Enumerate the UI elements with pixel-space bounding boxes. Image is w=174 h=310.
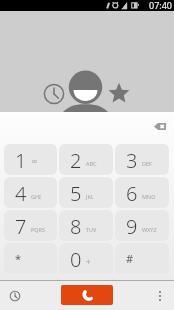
staticText: 9 [126, 213, 138, 240]
staticText: PQRS [31, 226, 46, 233]
staticText: 7 [15, 213, 27, 240]
staticText: 1 [15, 147, 27, 174]
staticText: TUV [86, 226, 97, 233]
staticText: ABC [86, 160, 97, 167]
staticText: WXYZ [142, 226, 157, 233]
button[interactable]: Backspace [147, 115, 173, 138]
button[interactable]: * [4, 243, 57, 274]
staticText: GHI [31, 193, 41, 200]
staticText: # [126, 251, 134, 266]
button[interactable]: 6 [115, 177, 169, 208]
staticText: 07:40 [149, 0, 173, 10]
button[interactable]: 8 [59, 210, 113, 241]
staticText: * [15, 251, 22, 266]
button[interactable]: 7 [4, 210, 57, 241]
button[interactable]: 9 [115, 210, 169, 241]
staticText: DEF [142, 160, 152, 167]
staticText: 8 [70, 213, 82, 240]
button[interactable]: 4 [4, 177, 57, 208]
staticText: ∞ [31, 157, 38, 166]
button[interactable]: 3 [115, 144, 169, 175]
button[interactable]: 5 [59, 177, 113, 208]
staticText: + [86, 256, 91, 267]
staticText: 4 [15, 180, 27, 207]
staticText: MNO [142, 193, 156, 200]
button[interactable]: # [115, 243, 169, 274]
button[interactable]: Recents [38, 78, 70, 110]
staticText: 6 [126, 180, 138, 207]
button[interactable]: 2 [59, 144, 113, 175]
staticText: 3 [126, 147, 138, 174]
button[interactable]: 0 [59, 243, 113, 274]
button[interactable]: Call history [0, 281, 30, 310]
button[interactable]: Favorites [103, 77, 135, 109]
button[interactable]: Call [61, 285, 113, 305]
button[interactable]: More options [145, 281, 174, 310]
staticText: 2 [70, 147, 82, 174]
button[interactable]: 1 [4, 144, 57, 175]
button[interactable]: Contacts [63, 68, 108, 112]
staticText: 0 [70, 246, 82, 273]
staticText: JKL [86, 193, 94, 200]
staticText: 5 [70, 180, 82, 207]
